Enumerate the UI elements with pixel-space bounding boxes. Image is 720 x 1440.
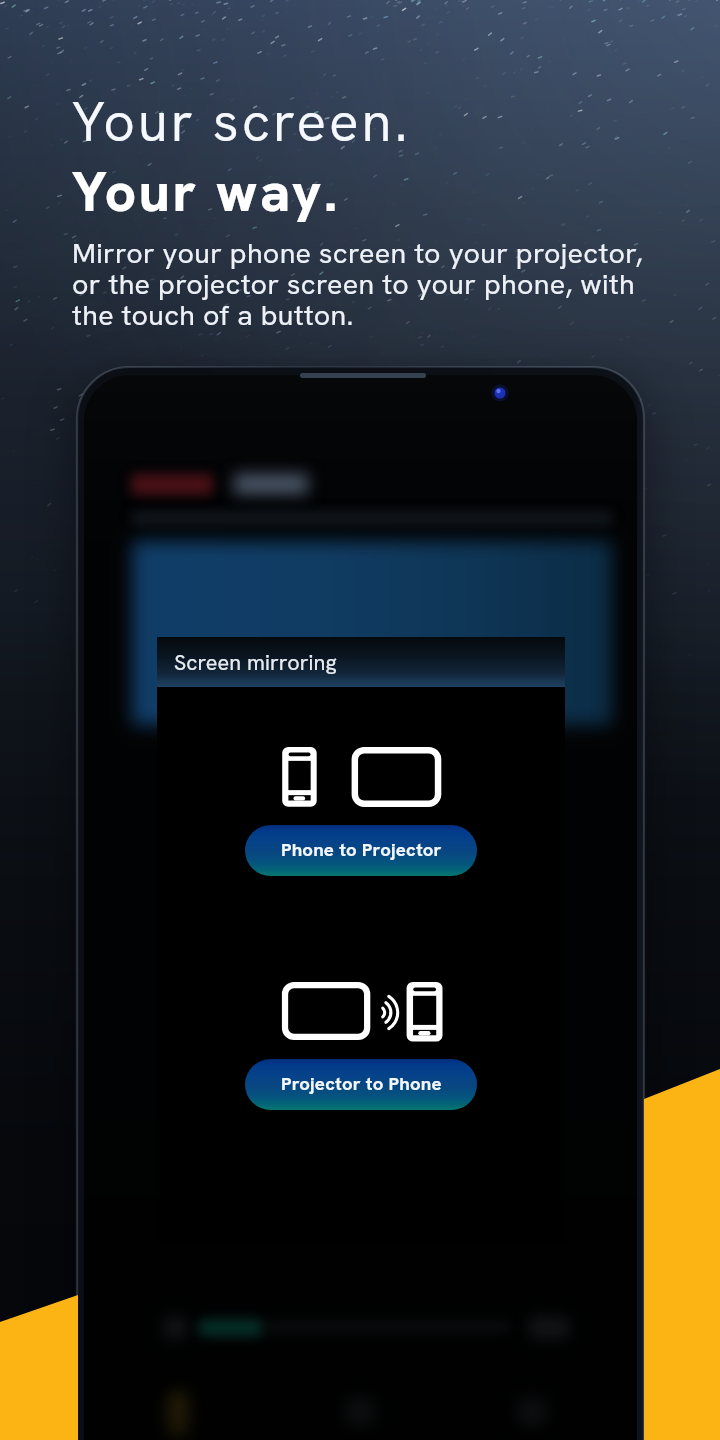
staticText: Screen mirroring xyxy=(174,648,337,676)
staticText: Mirror your phone screen to your project… xyxy=(72,234,643,334)
button[interactable]: Phone to Projector xyxy=(245,825,477,876)
staticText: Projector to Phone xyxy=(281,1071,442,1095)
staticText: Your screen. xyxy=(72,86,411,158)
staticText: Phone to Projector xyxy=(281,837,442,861)
staticText: Your way. xyxy=(72,156,340,228)
button[interactable]: Projector to Phone xyxy=(245,1059,477,1110)
